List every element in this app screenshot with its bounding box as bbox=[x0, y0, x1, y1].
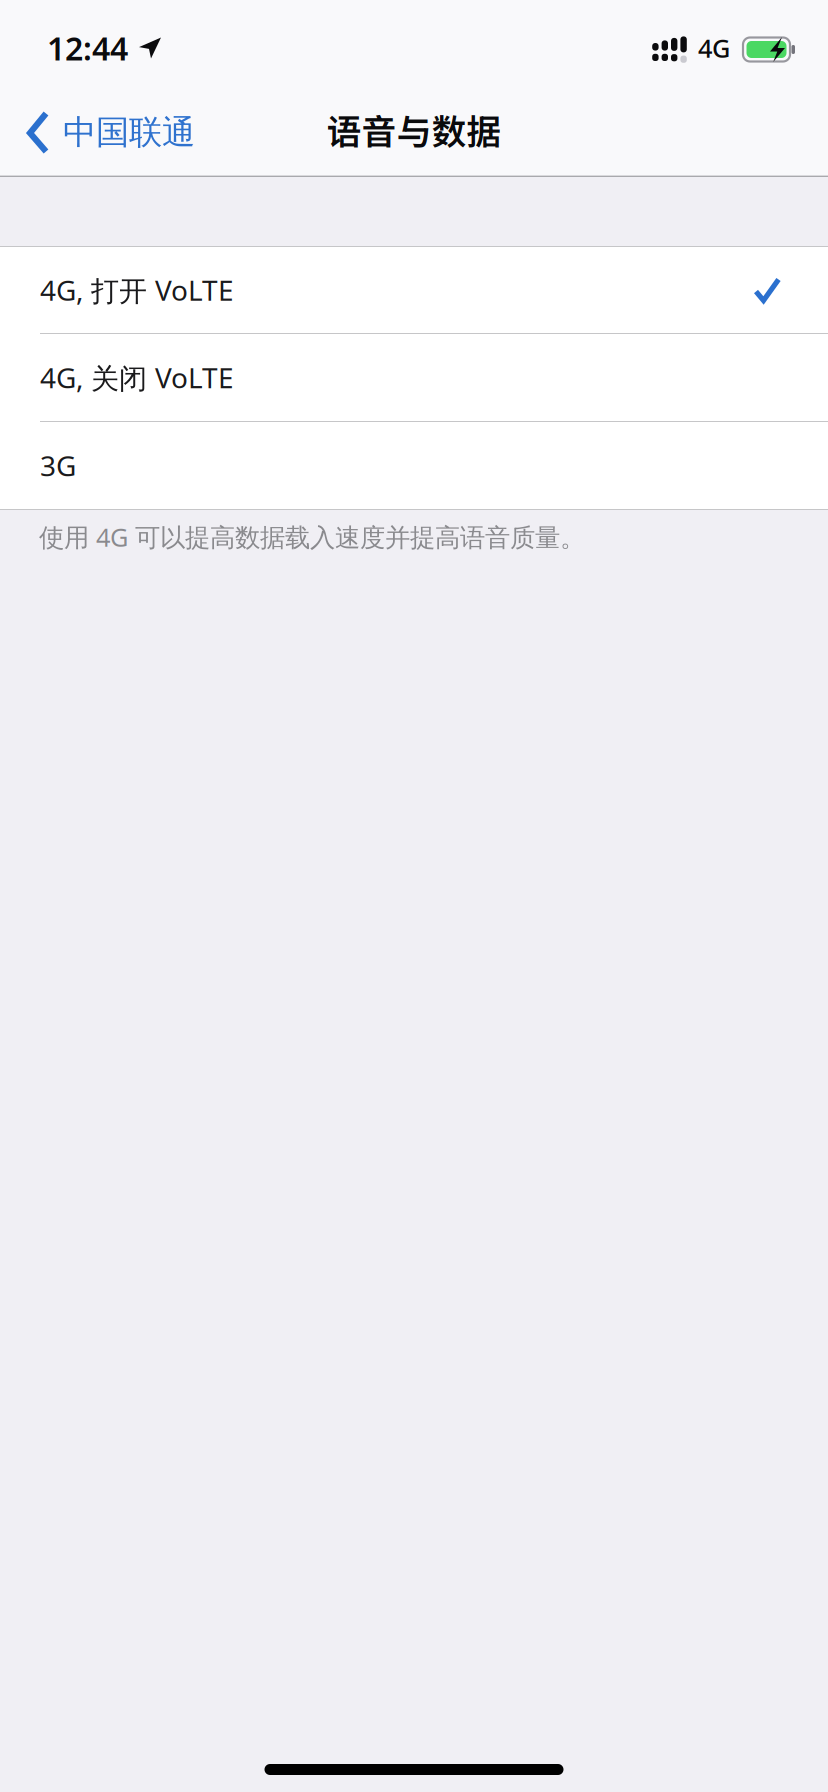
staticText: 12:44 bbox=[47, 27, 128, 69]
staticText: 使用 4G 可以提高数据载入速度并提高语音质量。 bbox=[39, 520, 585, 554]
staticText: 中国联通 bbox=[63, 112, 195, 153]
button[interactable]: 中国联通 bbox=[0, 88, 209, 176]
staticText: 4G, 关闭 VoLTE bbox=[40, 359, 234, 396]
button[interactable]: 4G, 关闭 VoLTE bbox=[0, 334, 828, 422]
staticText: 4G bbox=[698, 31, 730, 65]
staticText: 3G bbox=[40, 447, 76, 484]
staticText: 语音与数据 bbox=[326, 104, 501, 155]
staticText: 4G, 打开 VoLTE bbox=[40, 271, 234, 309]
button[interactable]: 4G, 打开 VoLTE bbox=[0, 247, 828, 334]
button[interactable]: 3G bbox=[0, 422, 828, 509]
